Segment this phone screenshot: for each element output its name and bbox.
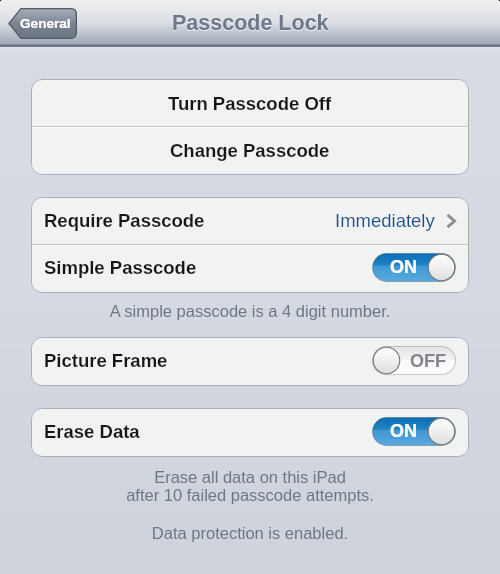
staticText: ON <box>390 257 417 277</box>
staticText: A simple passcode is a 4 digit number. <box>0 302 500 320</box>
staticText: OFF <box>410 351 446 371</box>
button[interactable]: Erase Data on <box>372 417 456 446</box>
staticText: Simple Passcode <box>44 257 197 278</box>
staticText: Picture Frame <box>44 350 168 371</box>
button[interactable]: Change Passcode <box>32 127 468 174</box>
button[interactable]: Picture Frame off <box>372 346 456 375</box>
staticText: Immediately <box>335 210 435 231</box>
staticText: Passcode Lock <box>172 11 329 35</box>
button[interactable]: Require Passcode <box>32 198 468 244</box>
button[interactable]: Turn Passcode Off <box>32 80 468 126</box>
staticText: Erase Data <box>44 421 140 442</box>
staticText: Change Passcode <box>170 140 330 161</box>
staticText: ON <box>390 421 417 441</box>
staticText: Erase all data on this iPad <box>0 468 500 486</box>
staticText: Require Passcode <box>44 210 205 231</box>
staticText: Passcode Lock <box>172 12 329 36</box>
button[interactable]: Back to General <box>8 8 77 39</box>
staticText: General <box>20 16 71 31</box>
staticText: after 10 failed passcode attempts. <box>0 486 500 504</box>
button[interactable]: Simple Passcode on <box>372 253 456 282</box>
staticText: Data protection is enabled. <box>0 524 500 542</box>
staticText: Turn Passcode Off <box>168 93 332 114</box>
